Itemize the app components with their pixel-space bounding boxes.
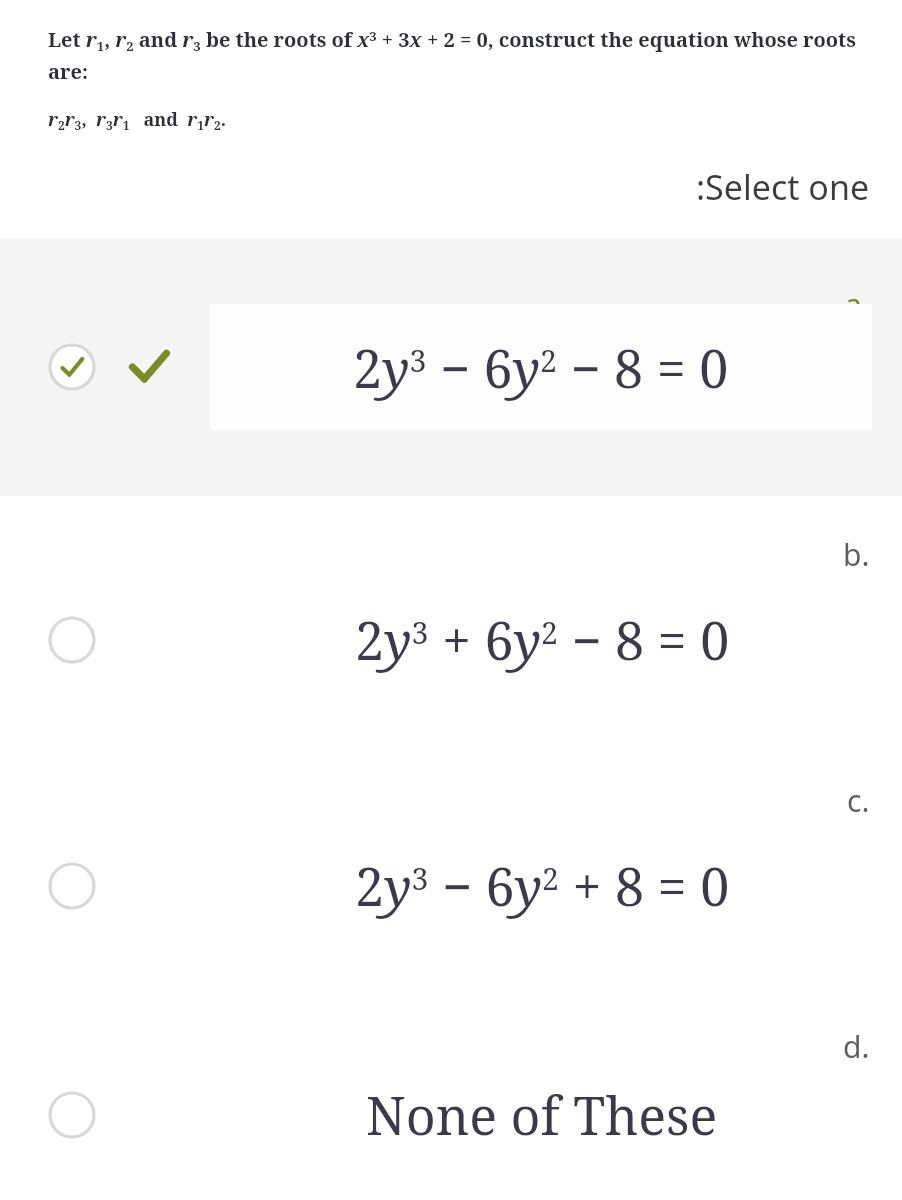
other: Correct answer: [126, 344, 172, 390]
other: Option c.: [48, 862, 96, 910]
staticText: a.: [845, 284, 870, 325]
other: Option d.: [48, 1091, 96, 1139]
button[interactable]: a.: [0, 238, 902, 496]
staticText: 2y3 − 6y2 + 8 = 0: [355, 850, 730, 921]
button[interactable]: b.: [0, 496, 902, 742]
staticText: 2y3 − 6y2 − 8 = 0: [353, 332, 729, 403]
staticText: None of These: [366, 1079, 718, 1150]
staticText: r2r3, r3r1 and r1r2.: [48, 107, 227, 134]
staticText: Let r1, r2 and r3 be the roots of x3 + 3…: [48, 26, 872, 85]
staticText: :Select one: [696, 164, 870, 210]
button[interactable]: d.: [0, 988, 902, 1200]
staticText: c.: [847, 780, 870, 821]
button[interactable]: c.: [0, 742, 902, 988]
other: Option b.: [48, 616, 96, 664]
staticText: 2y3 + 6y2 − 8 = 0: [355, 604, 730, 675]
other: Selected option a: [48, 343, 96, 391]
staticText: d.: [843, 1026, 870, 1067]
staticText: b.: [843, 534, 870, 575]
